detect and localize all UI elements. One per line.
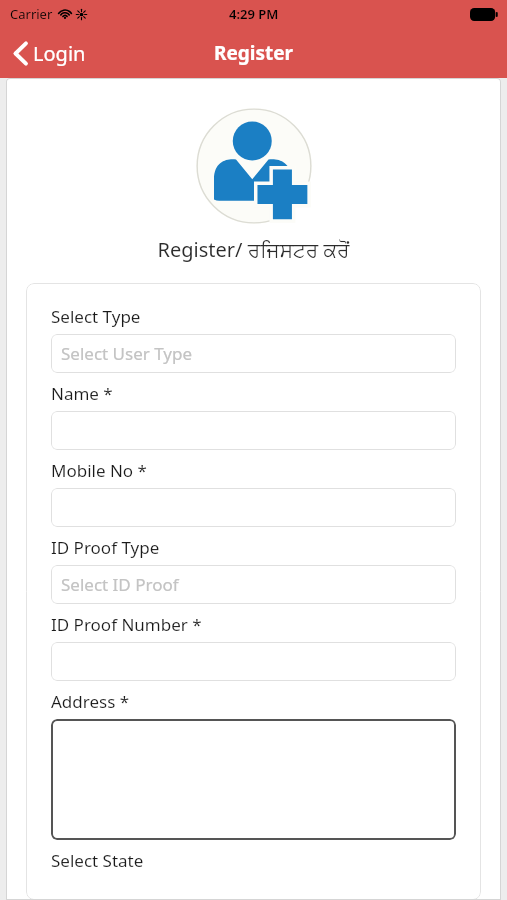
button[interactable]: Login (0, 34, 98, 73)
staticText: ID Proof Number * (51, 613, 202, 636)
staticText: Select User Type (61, 342, 193, 365)
staticText: Mobile No * (51, 459, 147, 482)
staticText: 4:29 PM (229, 5, 279, 23)
staticText: Register/ ਰਜਿਸਟਰ ਕਰੋਂ (6, 236, 501, 263)
button[interactable]: Select ID Proof (51, 565, 456, 604)
button[interactable]: Select User Type (51, 334, 456, 373)
button[interactable] (51, 411, 456, 450)
staticText: Name * (51, 382, 113, 405)
staticText: Login (33, 40, 86, 67)
staticText: Register (214, 40, 294, 66)
button[interactable] (51, 642, 456, 681)
staticText: Address * (51, 690, 130, 713)
staticText: Select State (51, 849, 144, 872)
staticText: Select Type (51, 305, 141, 328)
button[interactable] (51, 719, 456, 840)
staticText: Select ID Proof (61, 573, 179, 596)
staticText: Carrier (10, 5, 53, 23)
button[interactable] (51, 488, 456, 527)
staticText: ID Proof Type (51, 536, 160, 559)
